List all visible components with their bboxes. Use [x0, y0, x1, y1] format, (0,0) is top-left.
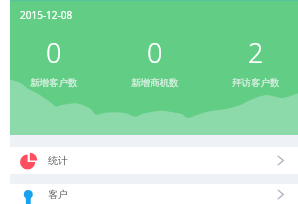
staticText: 统计	[48, 154, 68, 167]
staticText: 新增商机数	[131, 77, 179, 89]
button[interactable]: 统计	[10, 147, 298, 174]
button[interactable]: 客户	[10, 184, 298, 204]
staticText: 2015-12-08	[20, 8, 73, 22]
staticText: 新增客户数	[30, 77, 78, 89]
staticText: 0	[147, 34, 163, 71]
staticText: 2	[248, 34, 264, 71]
staticText: 客户	[48, 188, 68, 201]
staticText: 拜访客户数	[232, 77, 280, 89]
staticText: 0	[46, 34, 62, 71]
